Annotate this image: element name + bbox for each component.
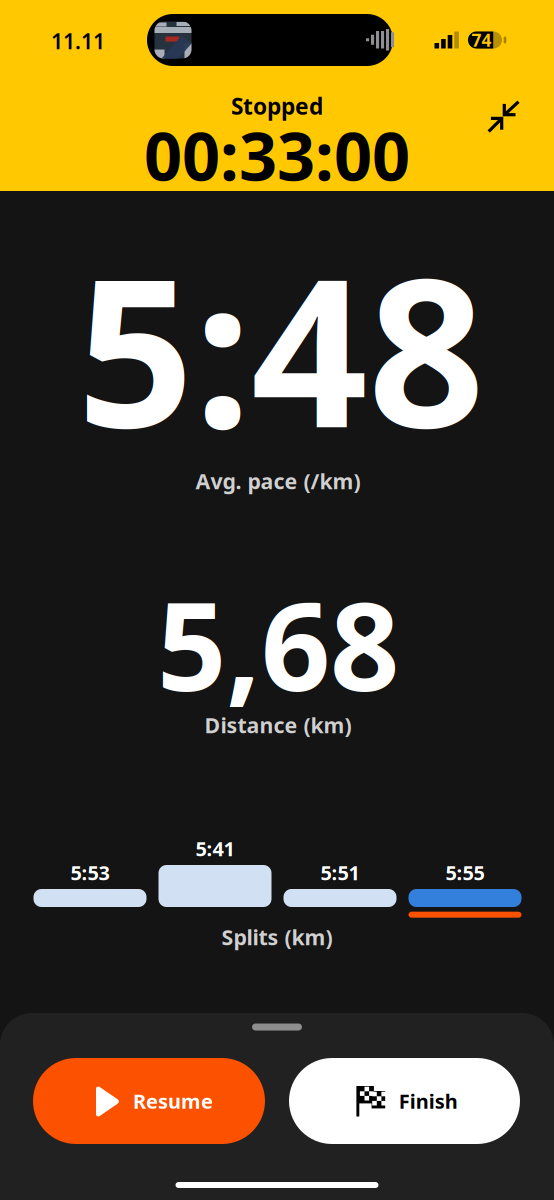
button[interactable]: Collapse: [478, 91, 528, 141]
staticText: 5,68: [157, 563, 399, 724]
staticText: 5:55: [445, 859, 484, 886]
staticText: Distance (km): [204, 711, 351, 739]
staticText: Stopped: [231, 91, 323, 121]
staticText: 11.11: [51, 27, 105, 55]
staticText: 74: [471, 28, 491, 51]
staticText: 5:51: [320, 859, 359, 886]
staticText: Resume: [133, 1088, 213, 1114]
staticText: Finish: [399, 1088, 458, 1114]
staticText: Avg. pace (/km): [195, 467, 360, 495]
staticText: 5:53: [70, 859, 109, 886]
button[interactable]: Resume: [33, 1058, 265, 1144]
button[interactable]: Finish: [289, 1058, 520, 1144]
staticText: 00:33:00: [144, 111, 410, 199]
staticText: 5:41: [195, 835, 234, 862]
staticText: 5:48: [77, 212, 485, 483]
staticText: Splits (km): [221, 923, 332, 951]
